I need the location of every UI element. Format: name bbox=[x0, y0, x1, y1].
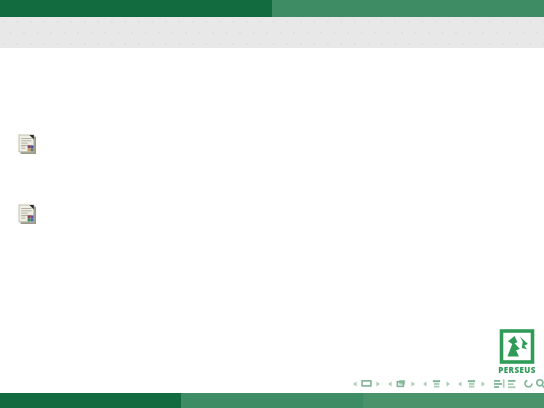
button[interactable]: Next page bbox=[457, 377, 486, 390]
button[interactable]: First page bbox=[352, 377, 381, 390]
button[interactable]: Search bbox=[535, 377, 544, 390]
button[interactable]: Perseus logo bbox=[496, 331, 538, 375]
button[interactable]: Document bbox=[19, 135, 36, 154]
button[interactable]: Previous page bbox=[422, 377, 451, 390]
staticText: PERSEUS bbox=[498, 364, 536, 375]
button[interactable]: Undo bbox=[523, 377, 534, 390]
button[interactable]: Previous section bbox=[387, 377, 416, 390]
button[interactable]: Outline bbox=[506, 377, 517, 390]
button[interactable]: Align bbox=[493, 377, 504, 390]
button[interactable]: Document bbox=[19, 205, 36, 224]
